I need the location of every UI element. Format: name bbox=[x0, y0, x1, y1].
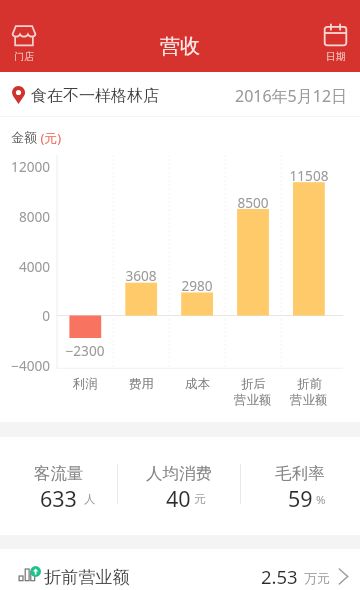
staticText: % bbox=[316, 492, 326, 508]
staticText: 营业额 bbox=[290, 392, 328, 408]
staticText: 毛利率 bbox=[275, 463, 325, 484]
staticText: 2980 bbox=[165, 276, 229, 295]
button[interactable]: 人均消费 bbox=[117, 437, 240, 535]
staticText: −2300 bbox=[53, 341, 117, 360]
button[interactable]: 门店 bbox=[0, 0, 50, 72]
staticText: 59 bbox=[288, 484, 313, 513]
staticText: 日期 bbox=[326, 50, 346, 63]
staticText: (元) bbox=[37, 129, 62, 147]
button[interactable]: 食在不一样格林店 bbox=[0, 72, 360, 116]
staticText: 门店 bbox=[14, 50, 34, 63]
staticText: 营收 bbox=[160, 34, 200, 59]
staticText: 元 bbox=[194, 492, 206, 506]
staticText: 8500 bbox=[221, 193, 285, 212]
button[interactable]: 客流量 bbox=[0, 437, 117, 535]
staticText: 8000 bbox=[0, 207, 50, 226]
staticText: 成本 bbox=[185, 376, 210, 392]
staticText: 食在不一样格林店 bbox=[31, 86, 159, 106]
staticText: 12000 bbox=[0, 157, 50, 176]
staticText: 2.53 bbox=[261, 564, 298, 589]
staticText: 3608 bbox=[109, 266, 173, 285]
staticText: 金额 bbox=[11, 129, 37, 145]
staticText: 折前营业额 bbox=[44, 566, 130, 588]
staticText: 折前 bbox=[297, 376, 322, 392]
staticText: 633 bbox=[40, 484, 77, 513]
staticText: 40 bbox=[166, 484, 191, 513]
button[interactable]: 毛利率 bbox=[240, 437, 360, 535]
staticText: 万元 bbox=[304, 570, 330, 586]
button[interactable]: 日期 bbox=[310, 0, 360, 72]
staticText: 4000 bbox=[0, 257, 50, 276]
staticText: 费用 bbox=[129, 376, 154, 392]
staticText: 0 bbox=[0, 306, 50, 325]
staticText: 利润 bbox=[73, 376, 98, 392]
button[interactable]: 折前营业额 bbox=[0, 549, 360, 590]
staticText: 客流量 bbox=[34, 463, 84, 484]
staticText: 折后 bbox=[241, 376, 266, 392]
staticText: 营业额 bbox=[234, 392, 272, 408]
staticText: 人 bbox=[84, 492, 96, 506]
staticText: 人均消费 bbox=[146, 463, 212, 484]
staticText: 11508 bbox=[277, 166, 341, 185]
staticText: −4000 bbox=[0, 356, 50, 375]
staticText: 2016年5月12日 bbox=[235, 85, 348, 107]
